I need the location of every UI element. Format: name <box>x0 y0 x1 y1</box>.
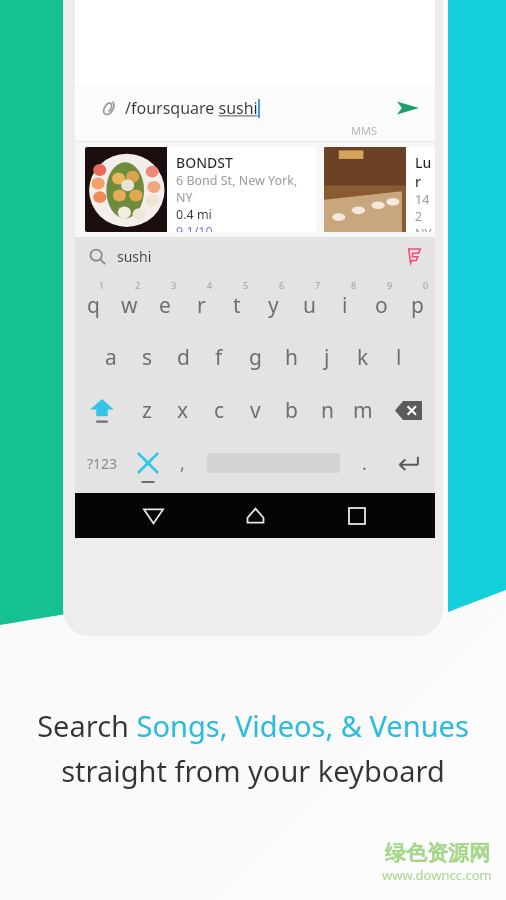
button[interactable]: 6 <box>255 275 291 331</box>
staticText: 7 <box>315 279 321 291</box>
staticText: r <box>197 291 206 320</box>
staticText: 142 <box>415 191 435 225</box>
staticText: ?123 <box>87 454 118 473</box>
staticText: a <box>105 343 117 372</box>
staticText: z <box>142 396 152 425</box>
staticText: Lur <box>415 153 435 191</box>
button[interactable]: 7 <box>291 275 327 331</box>
staticText: h <box>285 343 298 372</box>
button[interactable]: f <box>201 331 237 383</box>
button[interactable]: 1 <box>75 275 111 331</box>
staticText: g <box>249 343 262 372</box>
staticText: 2 <box>135 279 141 291</box>
button[interactable]: ?123 <box>75 437 129 489</box>
button[interactable]: v <box>237 383 273 437</box>
staticText: w <box>121 291 138 320</box>
button[interactable]: g <box>237 331 273 383</box>
staticText: d <box>177 343 190 372</box>
button[interactable]: Home <box>231 493 279 538</box>
button[interactable]: m <box>345 383 381 437</box>
staticText: BONDST <box>176 153 233 172</box>
staticText: x <box>177 396 189 425</box>
staticText: u <box>303 291 316 320</box>
staticText: i <box>342 291 348 320</box>
staticText: n <box>321 396 334 425</box>
button[interactable]: c <box>201 383 237 437</box>
staticText: t <box>233 291 241 320</box>
staticText: p <box>411 291 424 320</box>
staticText: 5 <box>243 279 249 291</box>
button[interactable]: j <box>309 331 345 383</box>
staticText: l <box>396 343 402 372</box>
button[interactable]: a <box>93 331 129 383</box>
staticText: 0 <box>423 279 429 291</box>
staticText: , <box>180 451 185 476</box>
button[interactable]: z <box>129 383 165 437</box>
button[interactable]: 9 <box>363 275 399 331</box>
button[interactable]: b <box>273 383 309 437</box>
button[interactable]: 3 <box>147 275 183 331</box>
staticText: 9 <box>387 279 393 291</box>
staticText: 绿色资源网 <box>385 840 490 866</box>
button[interactable]: d <box>165 331 201 383</box>
button[interactable]: 0 <box>399 275 435 331</box>
staticText: j <box>324 343 330 372</box>
button[interactable]: Close search <box>129 437 167 489</box>
staticText: 0.4 mi <box>176 206 212 223</box>
staticText: s <box>142 343 153 372</box>
staticText: 3 <box>171 279 177 291</box>
staticText: e <box>159 291 171 320</box>
staticText: www.downcc.com <box>382 866 492 884</box>
staticText: NY <box>415 225 432 232</box>
staticText: sushi <box>117 247 152 266</box>
button[interactable]: k <box>345 331 381 383</box>
button[interactable]: 5 <box>219 275 255 331</box>
button[interactable]: . <box>349 437 380 489</box>
staticText: MMS <box>351 123 377 138</box>
button[interactable]: BONDST <box>85 147 316 232</box>
staticText: 1 <box>99 279 105 291</box>
button[interactable]: 8 <box>327 275 363 331</box>
staticText: o <box>375 291 388 320</box>
staticText: k <box>357 343 369 372</box>
button[interactable]: Recents <box>333 493 381 538</box>
staticText: 6 Bond St, New York, NY <box>176 172 316 206</box>
button[interactable]: s <box>129 331 165 383</box>
staticText: Search Songs, Videos, & Venues <box>37 706 469 745</box>
button[interactable]: Send <box>391 91 425 125</box>
button[interactable]: Backspace <box>381 383 435 437</box>
staticText: 9.1/10 <box>176 223 213 232</box>
button[interactable] <box>198 437 349 489</box>
staticText: . <box>362 451 367 476</box>
button[interactable]: Attach <box>93 93 123 123</box>
button[interactable]: l <box>381 331 417 383</box>
button[interactable]: Shift <box>75 383 129 437</box>
button[interactable]: Enter <box>380 437 435 489</box>
staticText: 4 <box>207 279 213 291</box>
staticText: v <box>250 396 261 425</box>
staticText: m <box>353 396 373 425</box>
button[interactable]: 2 <box>111 275 147 331</box>
button[interactable]: x <box>165 383 201 437</box>
button[interactable]: n <box>309 383 345 437</box>
button[interactable]: , <box>167 437 198 489</box>
staticText: /foursquare sushi <box>125 97 258 119</box>
button[interactable]: 4 <box>183 275 219 331</box>
button[interactable]: sushi <box>75 237 435 275</box>
staticText: 8 <box>351 279 357 291</box>
staticText: f <box>215 343 223 372</box>
staticText: straight from your keyboard <box>61 751 445 790</box>
staticText: c <box>214 396 225 425</box>
staticText: 6 <box>279 279 285 291</box>
staticText: q <box>87 291 100 320</box>
staticText: y <box>268 291 279 320</box>
button[interactable]: Back <box>129 493 177 538</box>
button[interactable]: Lur <box>324 147 435 232</box>
button[interactable]: h <box>273 331 309 383</box>
staticText: b <box>285 396 298 425</box>
